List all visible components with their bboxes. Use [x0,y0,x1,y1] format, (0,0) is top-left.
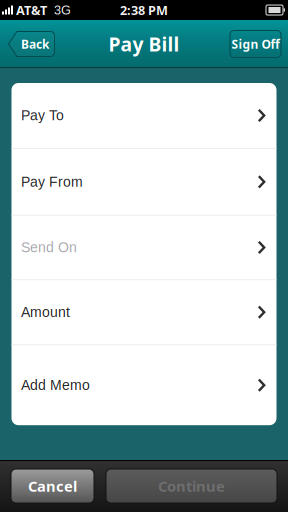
button[interactable]: Continue [106,469,277,503]
button[interactable]: Back [7,31,55,57]
staticText: 3G [54,3,71,17]
staticText: Amount [21,304,70,320]
button[interactable]: Amount [11,280,276,344]
staticText: Send On [21,240,77,255]
staticText: 2:38 PM [120,1,168,19]
staticText: Back [21,36,49,52]
staticText: Cancel [28,476,77,496]
button[interactable]: Send On [11,216,276,279]
staticText: Continue [158,476,225,496]
button[interactable]: Add Memo [11,345,276,425]
button[interactable]: Pay To [11,83,276,148]
staticText: AT&T [16,1,47,19]
button[interactable]: Sign Off [230,30,281,57]
button[interactable]: Pay From [11,149,276,215]
staticText: Pay Bill [108,31,179,57]
staticText: Add Memo [21,377,90,393]
button[interactable]: Cancel [11,469,94,503]
staticText: Pay To [21,108,64,123]
staticText: Sign Off [231,36,279,52]
staticText: Pay From [21,174,83,190]
